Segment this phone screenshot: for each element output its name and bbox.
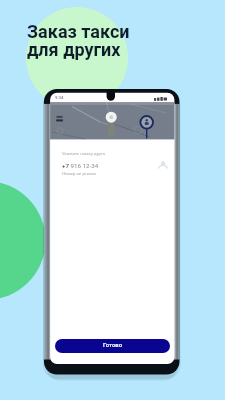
staticText: Готово	[103, 342, 123, 349]
staticText: Укажите номер друга	[62, 151, 106, 156]
button[interactable]: Choose from contacts	[157, 159, 169, 171]
staticText: Заказ такси	[27, 21, 130, 42]
staticText: 916 12-34	[69, 162, 99, 169]
staticText: для других	[27, 39, 121, 60]
staticText: Номер не указан	[62, 171, 96, 176]
staticText: +7	[62, 162, 69, 169]
button[interactable]: Готово	[55, 339, 170, 353]
staticText: 9:34	[55, 95, 64, 100]
